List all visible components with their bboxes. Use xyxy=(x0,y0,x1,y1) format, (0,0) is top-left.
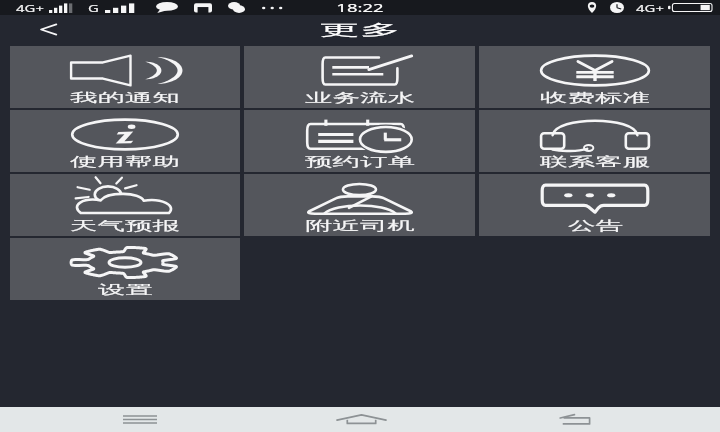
button[interactable]: 业务流水 xyxy=(244,46,475,108)
button[interactable]: 设置 xyxy=(10,238,240,300)
staticText: 业务流水 xyxy=(305,90,415,106)
button[interactable]: 收费标准 xyxy=(479,46,710,108)
staticText: 天气预报 xyxy=(70,218,180,234)
button[interactable]: 公告 xyxy=(479,174,710,236)
button[interactable]: 预约订单 xyxy=(244,110,475,172)
staticText: 附近司机 xyxy=(305,218,415,234)
button[interactable]: 联系客服 xyxy=(479,110,710,172)
staticText: 我的通知 xyxy=(70,90,180,106)
button[interactable]: 我的通知 xyxy=(10,46,240,108)
button[interactable]: Recent apps xyxy=(96,407,184,432)
staticText: 收费标准 xyxy=(540,90,650,106)
button[interactable]: Back xyxy=(533,407,621,432)
staticText: 公告 xyxy=(568,218,623,234)
button[interactable]: Back xyxy=(33,15,63,46)
button[interactable]: 使用帮助 xyxy=(10,110,240,172)
button[interactable]: 附近司机 xyxy=(244,174,475,236)
button[interactable]: Home xyxy=(317,407,405,432)
staticText: 4G+ xyxy=(7,2,53,14)
staticText: 4G+ xyxy=(627,2,673,14)
button[interactable]: 天气预报 xyxy=(10,174,240,236)
staticText: 设置 xyxy=(98,282,153,298)
staticText: 更多 xyxy=(319,21,401,40)
staticText: 联系客服 xyxy=(540,154,650,170)
staticText: 预约订单 xyxy=(305,154,415,170)
staticText: 使用帮助 xyxy=(70,154,180,170)
staticText: G xyxy=(86,2,101,14)
staticText: 18:22 xyxy=(310,1,410,15)
